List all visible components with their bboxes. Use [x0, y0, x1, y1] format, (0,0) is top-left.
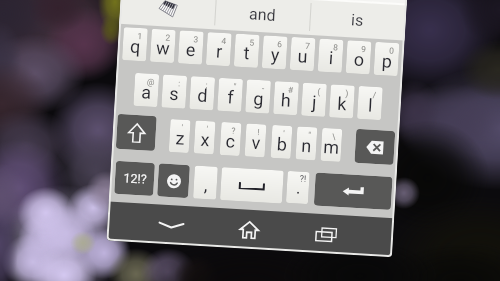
button[interactable]: g [245, 79, 271, 114]
button[interactable]: Space [220, 167, 284, 204]
staticText: u [297, 45, 308, 67]
staticText: b [276, 133, 288, 155]
button[interactable]: Backspace [354, 129, 395, 165]
button[interactable]: o [346, 40, 371, 74]
staticText: ' [206, 124, 208, 134]
staticText: ' [283, 129, 285, 139]
button[interactable]: z [169, 119, 191, 153]
staticText: a [141, 81, 152, 103]
staticText: i [328, 47, 334, 68]
button[interactable]: Home [228, 209, 270, 250]
staticText: 12!? [123, 170, 147, 187]
staticText: t [243, 42, 250, 63]
staticText: 4 [221, 36, 227, 46]
button[interactable]: Recent apps [305, 213, 347, 254]
staticText: \ [332, 131, 336, 142]
button[interactable]: v [245, 123, 266, 157]
button[interactable]: k [329, 84, 355, 119]
staticText: x [200, 129, 210, 150]
staticText: ' [181, 123, 183, 133]
staticText: 5 [249, 37, 254, 48]
button[interactable]: a [133, 73, 159, 107]
button[interactable]: m [320, 128, 342, 162]
staticText: m [323, 136, 340, 158]
staticText: " [233, 82, 237, 92]
staticText: w [155, 37, 170, 59]
staticText: - [261, 83, 265, 93]
staticText: ( [317, 86, 321, 97]
staticText: f [226, 86, 235, 108]
button[interactable]: . [286, 171, 310, 204]
button[interactable]: Symbols [114, 161, 155, 196]
staticText: d [196, 84, 209, 106]
staticText: r [215, 40, 223, 62]
staticText: e [185, 39, 196, 60]
button[interactable]: l [357, 86, 383, 120]
staticText: ?! [299, 174, 307, 185]
staticText: v [251, 132, 261, 153]
staticText: @ [146, 76, 155, 87]
button[interactable]: e [178, 30, 204, 65]
button[interactable]: j [301, 83, 327, 117]
button[interactable]: x [194, 120, 215, 154]
button[interactable]: Hide keyboard [150, 204, 192, 245]
button[interactable]: u [290, 37, 316, 71]
staticText: 9 [361, 44, 366, 54]
staticText: s [168, 83, 180, 104]
button[interactable]: q [122, 27, 148, 61]
staticText: : [177, 78, 181, 88]
button[interactable]: w [150, 29, 176, 63]
button[interactable]: t [234, 34, 260, 68]
staticText: / [372, 90, 377, 100]
button[interactable]: Emoji [157, 163, 190, 198]
staticText: 3 [193, 34, 199, 44]
button[interactable]: Shift [116, 114, 157, 151]
staticText: p [381, 50, 393, 72]
staticText: ; [205, 80, 208, 90]
staticText: h [280, 89, 291, 111]
staticText: , [203, 174, 208, 195]
staticText: n [301, 135, 312, 156]
staticText: 1 [137, 31, 143, 41]
button[interactable]: i [318, 38, 343, 73]
button[interactable]: p [374, 42, 399, 76]
staticText: l [367, 94, 373, 116]
staticText: ? [231, 125, 236, 136]
staticText: c [225, 130, 236, 152]
staticText: ) [345, 88, 349, 98]
staticText: . [295, 177, 301, 199]
button[interactable]: h [273, 81, 299, 115]
staticText: g [252, 88, 265, 109]
staticText: z [175, 127, 185, 149]
button[interactable]: and [214, 0, 311, 35]
staticText: 6 [277, 39, 282, 49]
staticText: and [248, 4, 276, 25]
staticText: o [353, 49, 365, 70]
button[interactable]: s [161, 74, 187, 109]
staticText: 7 [305, 41, 310, 51]
staticText: 0 [389, 46, 394, 56]
button[interactable]: y [262, 35, 288, 70]
button[interactable]: Keyboard settings [147, 0, 188, 26]
staticText: 8 [333, 42, 338, 53]
button[interactable]: is [309, 0, 406, 40]
button[interactable]: b [270, 125, 292, 159]
button[interactable]: c [220, 122, 241, 156]
button[interactable]: Enter [314, 172, 393, 210]
staticText: " [308, 130, 311, 140]
button[interactable]: , [193, 165, 218, 200]
staticText: ! [257, 127, 260, 137]
staticText: j [311, 91, 317, 112]
staticText: 2 [165, 32, 171, 43]
button[interactable]: f [217, 78, 243, 112]
staticText: y [270, 44, 280, 65]
button[interactable]: n [295, 126, 317, 160]
staticText: k [336, 93, 347, 114]
button[interactable]: d [189, 76, 215, 110]
staticText: q [129, 35, 141, 57]
staticText: is [350, 10, 364, 30]
staticText: # [287, 85, 294, 95]
button[interactable]: r [206, 32, 232, 66]
